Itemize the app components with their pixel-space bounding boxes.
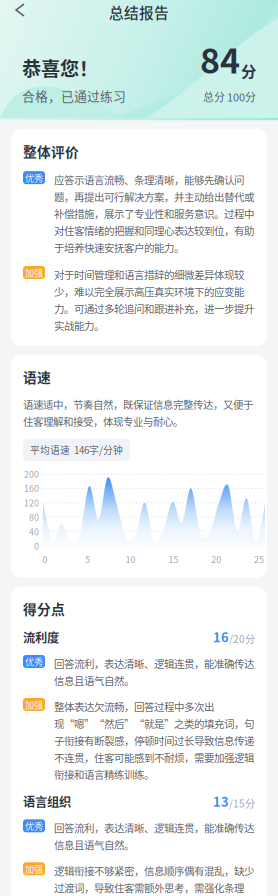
staticText: 对于时间管理和语言措辞的细微差异体现较少，难以完全展示高压真实环境下的应变能力。… (54, 266, 254, 334)
staticText: 整体表达欠流畅，回答过程中多次出现“嗯”“然后”“就是”之类的填充词，句子衔接有… (54, 698, 254, 783)
staticText: 120 (24, 496, 39, 509)
staticText: 40 (29, 525, 39, 538)
staticText: 0 (42, 553, 47, 565)
staticText: 80 (29, 511, 39, 523)
staticText: 平均语速 146字/分钟 (30, 443, 123, 457)
staticText: 20 (211, 553, 221, 565)
staticText: 合格，已通过练习 (22, 86, 126, 105)
staticText: 加强 (25, 698, 43, 711)
staticText: 13 (213, 792, 229, 810)
staticText: 优秀 (25, 655, 43, 668)
staticText: 优秀 (25, 819, 43, 832)
staticText: 逻辑衔接不够紧密，信息顺序偶有混乱，缺少过渡词，导致住客需额外思考，需强化条理性… (54, 862, 254, 896)
staticText: 84 (200, 34, 240, 83)
staticText: /20分 (229, 631, 255, 646)
staticText: 25 (254, 553, 264, 565)
staticText: 总分 100分 (203, 89, 256, 105)
staticText: 回答流利，表达清晰、逻辑连贯，能准确传达信息且语气自然。 (54, 819, 254, 853)
staticText: 得分点 (23, 598, 65, 618)
staticText: 加强 (25, 266, 43, 279)
staticText: 整体评价 (23, 141, 79, 161)
staticText: 语速适中，节奏自然，既保证信息完整传达，又便于住客理解和接受，体现专业与耐心。 (23, 396, 253, 430)
staticText: 回答流利，表达清晰、逻辑连贯，能准确传达信息且语气自然。 (54, 655, 254, 689)
staticText: 160 (24, 482, 39, 494)
staticText: 200 (24, 467, 39, 480)
staticText: 总结报告 (109, 1, 169, 23)
staticText: 15 (168, 553, 178, 565)
staticText: 流利度 (23, 628, 59, 646)
staticText: 恭喜您！ (22, 54, 98, 82)
staticText: 5 (85, 553, 90, 565)
staticText: /15分 (229, 796, 255, 810)
staticText: 语速 (23, 367, 51, 387)
staticText: 优秀 (25, 171, 43, 184)
button[interactable]: 返回 (0, 0, 40, 24)
staticText: 0 (34, 539, 39, 552)
staticText: 16 (213, 627, 229, 646)
staticText: 语言组织 (23, 793, 71, 810)
staticText: 分 (241, 59, 256, 82)
staticText: 加强 (25, 862, 43, 875)
staticText: 应答示语言流畅、条理清晰，能够先确认问题，再提出可行解决方案，并主动给出替代或补… (54, 171, 254, 256)
staticText: 10 (126, 553, 136, 565)
